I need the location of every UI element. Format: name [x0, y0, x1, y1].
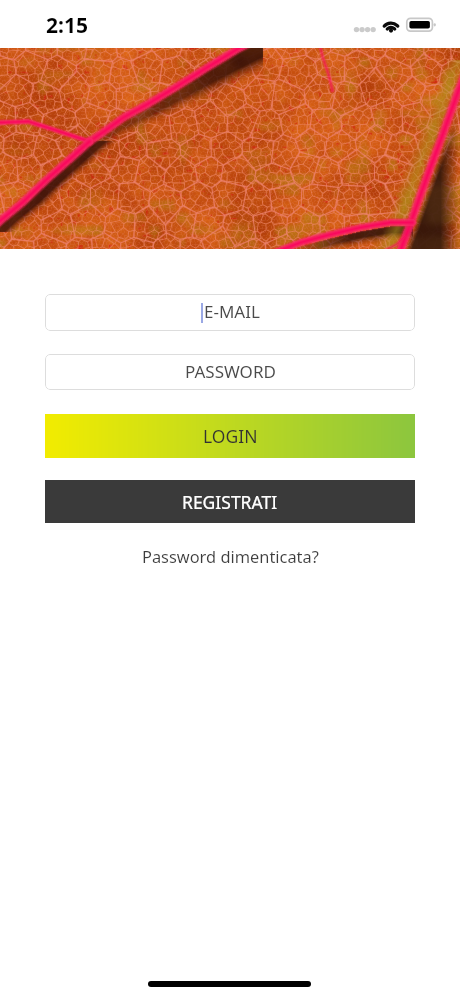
- button[interactable]: E-MAIL: [45, 294, 415, 331]
- staticText: 2:15: [46, 11, 88, 40]
- button[interactable]: LOGIN: [45, 414, 415, 458]
- staticText: PASSWORD: [185, 360, 276, 383]
- button[interactable]: REGISTRATI: [45, 480, 415, 523]
- staticText: E-MAIL: [204, 300, 260, 323]
- staticText: REGISTRATI: [182, 490, 278, 514]
- button[interactable]: Password dimenticata?: [132, 541, 329, 571]
- staticText: LOGIN: [203, 424, 258, 448]
- button[interactable]: PASSWORD: [45, 354, 415, 390]
